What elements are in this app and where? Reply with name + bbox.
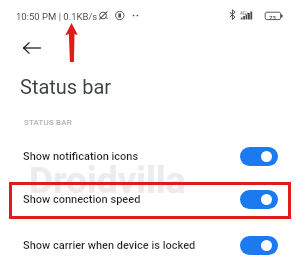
staticText: Show connection speed: [23, 193, 141, 206]
staticText: 73: [269, 14, 276, 21]
button[interactable]: Show connection speed: [0, 177, 300, 221]
button[interactable]: Toggle on: [240, 190, 278, 209]
button[interactable]: Show carrier when device is locked: [0, 223, 300, 264]
staticText: Status bar: [20, 75, 112, 98]
staticText: Droidvilla: [29, 159, 186, 202]
button[interactable]: Toggle on: [240, 147, 278, 166]
staticText: Show notification icons: [23, 150, 139, 163]
staticText: 10:50 PM | 0.1KB/s: [16, 11, 98, 22]
staticText: Show carrier when device is locked: [23, 239, 196, 252]
button[interactable]: Back: [12, 34, 51, 62]
button[interactable]: Show notification icons: [0, 134, 300, 178]
staticText: 4G+: [240, 10, 250, 16]
button[interactable]: Toggle on: [240, 236, 278, 255]
staticText: STATUS BAR: [24, 118, 72, 127]
